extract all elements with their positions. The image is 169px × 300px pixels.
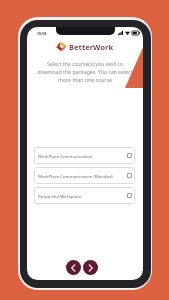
button[interactable]: WorkPlace Communication	[34, 147, 135, 164]
staticText: Respectful Workplace	[38, 193, 82, 199]
staticText: WorkPlace Communication	[38, 153, 93, 159]
button[interactable]: Next	[83, 260, 98, 275]
button[interactable]: WorkPlace Communication (Blended)	[34, 167, 135, 184]
button[interactable]: Respectful Workplace	[34, 187, 135, 204]
staticText: BetterWork	[69, 42, 114, 52]
staticText: Select the course(s) you wish to downloa…	[37, 60, 133, 83]
staticText: 10:58	[37, 31, 47, 36]
staticText: WorkPlace Communication (Blended)	[38, 173, 113, 179]
button[interactable]: Previous	[66, 260, 81, 275]
